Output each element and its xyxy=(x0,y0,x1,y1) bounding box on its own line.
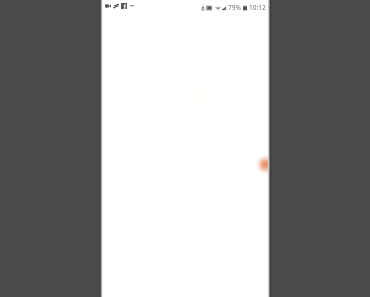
staticText: 10:12 xyxy=(249,3,266,12)
button[interactable]: Add xyxy=(255,154,269,175)
staticText: 79% xyxy=(228,3,241,12)
